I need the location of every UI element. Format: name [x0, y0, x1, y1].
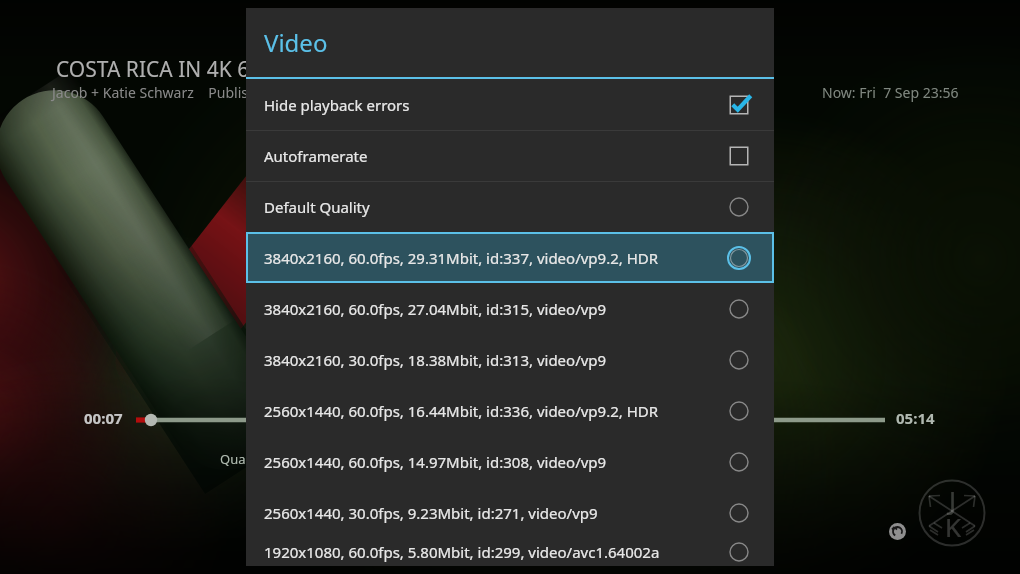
- staticText: 3840x2160, 60.0fps, 29.31Mbit, id:337, v…: [264, 248, 704, 268]
- button[interactable]: Autoframerate: [246, 130, 774, 181]
- staticText: 1920x1080, 60.0fps, 5.80Mbit, id:299, vi…: [264, 542, 704, 562]
- staticText: 3840x2160, 30.0fps, 18.38Mbit, id:313, v…: [264, 350, 704, 370]
- button[interactable]: 3840x2160, 60.0fps, 29.31Mbit, id:337, v…: [246, 232, 774, 283]
- staticText: Quality: [220, 450, 264, 468]
- staticText: J: [949, 482, 957, 517]
- staticText: 2560x1440, 60.0fps, 16.44Mbit, id:336, v…: [264, 401, 704, 421]
- button[interactable]: 2560x1440, 30.0fps, 9.23Mbit, id:271, vi…: [246, 487, 774, 538]
- staticText: Hide playback errors: [264, 95, 704, 115]
- staticText: J: [949, 482, 957, 517]
- staticText: Jacob + Katie Schwarz Published on Aug 7…: [52, 83, 375, 102]
- staticText: Video: [264, 26, 328, 59]
- staticText: Autoframerate: [264, 146, 704, 166]
- staticText: COSTA RICA IN 4K 60fps HDR (ULTRA HD): [56, 55, 460, 84]
- staticText: 2560x1440, 30.0fps, 9.23Mbit, id:271, vi…: [264, 503, 704, 523]
- staticText: K: [945, 509, 962, 544]
- staticText: 05:14: [896, 408, 935, 428]
- button[interactable]: Hide playback errors: [246, 79, 774, 130]
- staticText: 2560x1440, 60.0fps, 14.97Mbit, id:308, v…: [264, 452, 704, 472]
- button[interactable]: 3840x2160, 30.0fps, 18.38Mbit, id:313, v…: [246, 334, 774, 385]
- button[interactable]: 2560x1440, 60.0fps, 16.44Mbit, id:336, v…: [246, 385, 774, 436]
- staticText: 3840x2160, 60.0fps, 27.04Mbit, id:315, v…: [264, 299, 704, 319]
- staticText: Now: Fri 7 Sep 23:56: [822, 83, 959, 102]
- staticText: 00:07: [84, 408, 123, 428]
- button[interactable]: Default Quality: [246, 181, 774, 232]
- button[interactable]: Replay: [889, 523, 906, 540]
- button[interactable]: 3840x2160, 60.0fps, 27.04Mbit, id:315, v…: [246, 283, 774, 334]
- staticText: Default Quality: [264, 197, 704, 217]
- button[interactable]: 2560x1440, 60.0fps, 14.97Mbit, id:308, v…: [246, 436, 774, 487]
- button[interactable]: 1920x1080, 60.0fps, 5.80Mbit, id:299, vi…: [246, 538, 774, 566]
